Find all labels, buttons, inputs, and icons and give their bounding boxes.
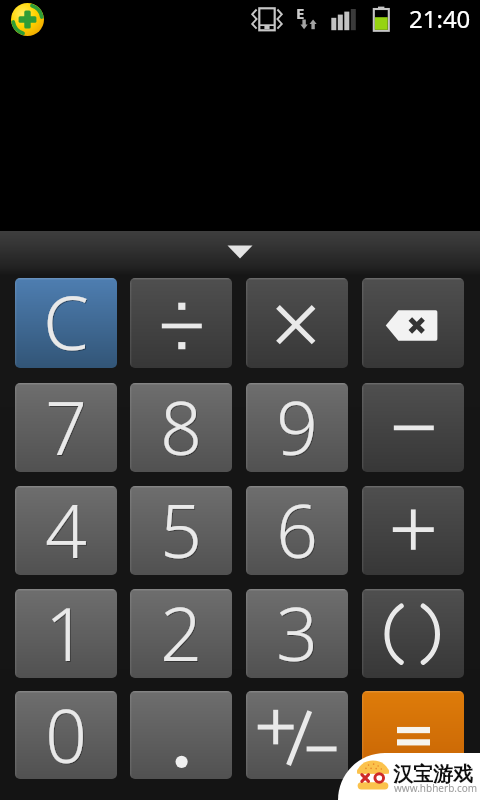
- staticText: 1: [46, 589, 88, 673]
- staticText: 5: [161, 486, 203, 570]
- button[interactable]: 7: [15, 383, 117, 472]
- staticText: 6: [276, 486, 318, 569]
- staticText: 0: [45, 691, 87, 773]
- staticText: 9: [277, 383, 319, 467]
- staticText: C: [43, 278, 89, 362]
- button[interactable]: Collapse display: [222, 243, 258, 261]
- button[interactable]: 5: [130, 486, 232, 575]
- button[interactable]: 6: [246, 486, 348, 575]
- staticText: 4: [46, 486, 88, 570]
- staticText: E: [296, 3, 305, 23]
- staticText: 5: [160, 486, 202, 569]
- button[interactable]: 1: [15, 589, 117, 678]
- button[interactable]: Decimal point: [130, 691, 232, 779]
- staticText: 7: [45, 383, 87, 466]
- button[interactable]: 0: [15, 691, 117, 779]
- button[interactable]: Plus: [362, 486, 464, 575]
- staticText: 8: [161, 383, 203, 467]
- staticText: 0: [46, 691, 88, 774]
- staticText: 3: [277, 589, 319, 673]
- button[interactable]: 9: [246, 383, 348, 472]
- staticText: 7: [46, 383, 88, 467]
- staticText: 1: [45, 589, 87, 672]
- staticText: C: [44, 278, 90, 363]
- button[interactable]: Equals: [362, 691, 464, 779]
- staticText: 9: [276, 383, 318, 466]
- button[interactable]: Divide: [130, 278, 232, 368]
- staticText: 2: [161, 589, 203, 673]
- button[interactable]: 4: [15, 486, 117, 575]
- staticText: 21:40: [409, 2, 471, 35]
- button[interactable]: Multiply: [246, 278, 348, 368]
- staticText: 4: [45, 486, 87, 569]
- button[interactable]: 8: [130, 383, 232, 472]
- button[interactable]: Clear: [15, 278, 117, 368]
- staticText: 6: [277, 486, 319, 570]
- button[interactable]: Parentheses: [362, 589, 464, 678]
- staticText: 3: [276, 589, 318, 672]
- staticText: 2: [160, 589, 202, 672]
- staticText: 8: [160, 383, 202, 466]
- button[interactable]: 3: [246, 589, 348, 678]
- button[interactable]: 2: [130, 589, 232, 678]
- button[interactable]: Backspace: [362, 278, 464, 368]
- button[interactable]: Minus: [362, 383, 464, 472]
- staticText: www.hbherb.com: [394, 781, 478, 795]
- button[interactable]: Plus or minus: [246, 691, 348, 779]
- staticText: 汉宝游戏: [393, 762, 473, 787]
